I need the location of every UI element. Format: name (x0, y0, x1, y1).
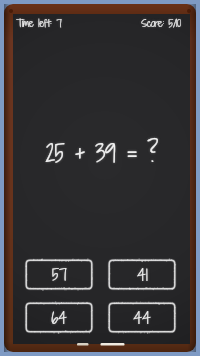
staticText: Time left: 7 (16, 15, 62, 30)
staticText: 57 (52, 264, 67, 286)
button[interactable]: 41 (108, 259, 176, 290)
staticText: Score: 5/10 (141, 15, 181, 30)
staticText: 41 (137, 264, 148, 286)
staticText: 44 (133, 307, 151, 329)
staticText: 64 (51, 307, 67, 329)
button[interactable]: 44 (108, 302, 176, 333)
button[interactable]: 57 (25, 259, 93, 290)
staticText: 25 + 39 = ? (45, 137, 158, 170)
button[interactable]: 64 (25, 302, 93, 333)
